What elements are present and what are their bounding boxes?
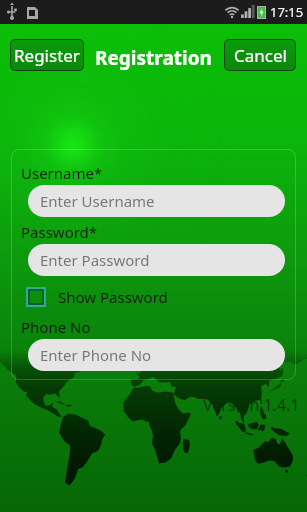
staticText: Register <box>14 44 80 67</box>
staticText: Version:1.4.1 <box>203 394 300 416</box>
staticText: Show Password <box>58 287 168 307</box>
staticText: Enter Password <box>40 250 150 270</box>
staticText: Registration <box>0 45 307 71</box>
staticText: Phone No <box>21 317 91 337</box>
staticText: Cancel <box>234 44 287 67</box>
button[interactable]: Show Password <box>26 286 174 308</box>
staticText: Enter Phone No <box>40 345 152 365</box>
staticText: Password* <box>21 222 98 242</box>
button[interactable]: Enter Password <box>28 244 285 276</box>
button[interactable]: Register <box>10 39 84 71</box>
button[interactable]: Cancel <box>224 39 296 71</box>
staticText: 17:15 <box>270 3 304 21</box>
staticText: Enter Username <box>40 191 155 211</box>
button[interactable]: Enter Phone No <box>28 339 285 371</box>
staticText: Username* <box>21 163 103 183</box>
button[interactable]: Enter Username <box>28 185 285 217</box>
